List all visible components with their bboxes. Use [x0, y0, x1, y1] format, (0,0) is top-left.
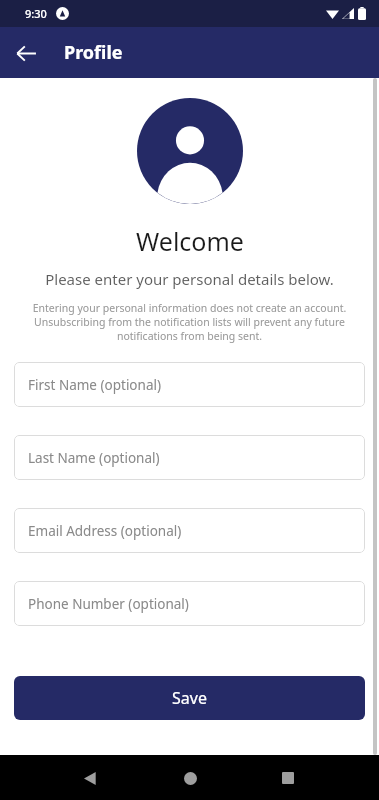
button[interactable]: Phone Number (optional) — [14, 581, 365, 626]
staticText: Please enter your personal details below… — [45, 269, 334, 289]
button[interactable]: Back — [72, 760, 108, 796]
button[interactable]: Last Name (optional) — [14, 435, 365, 480]
button[interactable]: Recent apps — [270, 760, 306, 796]
staticText: Welcome — [136, 224, 244, 258]
button[interactable]: First Name (optional) — [14, 362, 365, 407]
button[interactable]: Back — [6, 33, 46, 73]
staticText: Entering your personal information does … — [28, 301, 351, 343]
staticText: Phone Number (optional) — [28, 595, 189, 613]
staticText: Profile — [64, 40, 123, 65]
staticText: 9:30 — [25, 6, 47, 21]
button[interactable]: Home — [172, 760, 208, 796]
staticText: First Name (optional) — [28, 376, 161, 394]
staticText: Last Name (optional) — [28, 449, 160, 467]
staticText: Save — [172, 687, 207, 709]
staticText: Email Address (optional) — [28, 522, 182, 540]
button[interactable]: Email Address (optional) — [14, 508, 365, 553]
button[interactable]: Save — [14, 676, 365, 720]
